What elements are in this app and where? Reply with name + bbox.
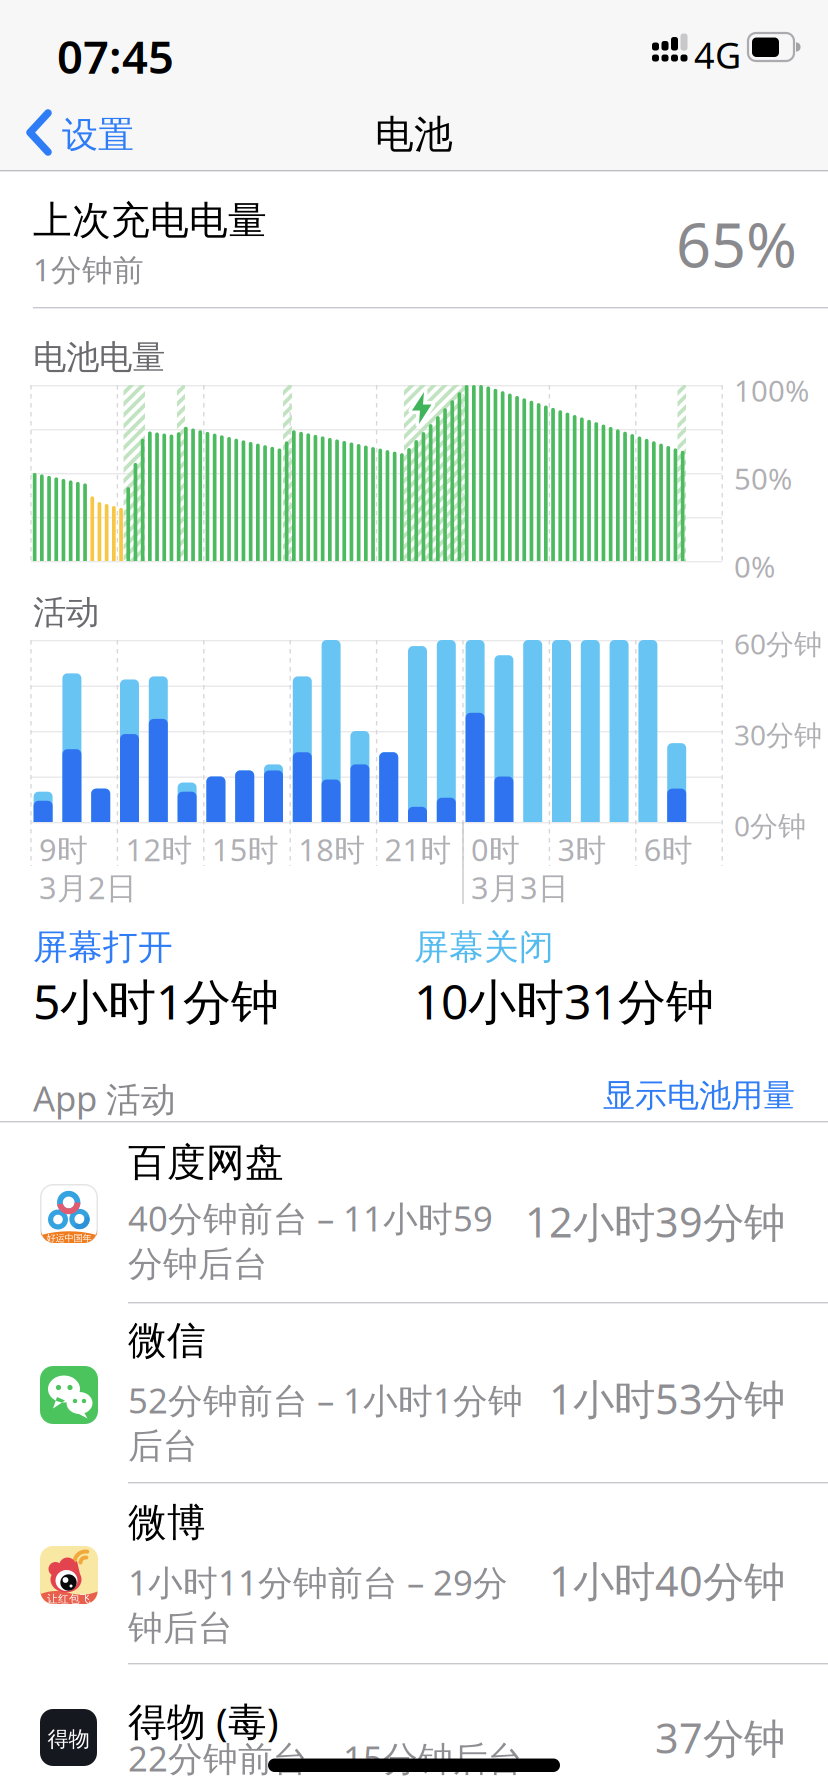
staticText: 60分钟 — [734, 625, 822, 662]
staticText: 100% — [734, 371, 809, 410]
staticText: 6时 — [644, 829, 693, 870]
staticText: 微博 — [128, 1499, 206, 1546]
staticText: 上次充电电量 — [33, 197, 267, 244]
staticText: 百度网盘 — [128, 1139, 284, 1186]
staticText: 1小时40分钟 — [549, 1553, 785, 1608]
button[interactable]: 得物 — [0, 1663, 828, 1792]
staticText: 10小时31分钟 — [414, 969, 714, 1033]
staticText: 65% — [676, 203, 797, 284]
staticText: 微信 — [128, 1317, 206, 1364]
staticText: 电池电量 — [33, 337, 165, 378]
staticText: 22分钟前台 – 15分钟后台 — [128, 1735, 523, 1781]
staticText: 15时 — [212, 829, 279, 870]
staticText: 屏幕打开 — [33, 926, 173, 969]
staticText: 07:45 — [57, 26, 174, 86]
staticText: 好运中国年 — [46, 1232, 91, 1244]
staticText: 18时 — [298, 829, 365, 870]
staticText: 0分钟 — [734, 807, 806, 844]
button[interactable]: 好运中国年 — [0, 1128, 828, 1302]
staticText: 3时 — [557, 829, 606, 870]
staticText: 9时 — [39, 829, 88, 870]
staticText: 得物 — [47, 1726, 89, 1752]
staticText: 得物 (毒) — [128, 1695, 279, 1746]
staticText: 40分钟前台 – 11小时59 分钟后台 — [128, 1195, 493, 1286]
staticText: 0时 — [471, 829, 520, 870]
button[interactable]: 显示电池用量 — [0, 1076, 795, 1115]
staticText: 活动 — [33, 592, 99, 633]
staticText: 1分钟前 — [33, 249, 144, 290]
staticText: 让红包飞 — [47, 1592, 91, 1606]
staticText: App 活动 — [33, 1075, 176, 1121]
staticText: 3月3日 — [471, 867, 569, 908]
staticText: 12时 — [125, 829, 192, 870]
staticText: 50% — [734, 459, 792, 498]
staticText: 屏幕关闭 — [414, 926, 554, 969]
staticText: 5小时1分钟 — [33, 969, 279, 1033]
staticText: 52分钟前台 – 1小时1分钟 后台 — [128, 1377, 523, 1468]
staticText: 设置 — [62, 113, 134, 157]
staticText: 3月2日 — [39, 867, 137, 908]
staticText: 0% — [734, 547, 775, 586]
staticText: 4G — [694, 31, 741, 79]
staticText: 显示电池用量 — [603, 1076, 795, 1115]
staticText: 1小时53分钟 — [549, 1371, 785, 1426]
staticText: 21时 — [385, 829, 452, 870]
staticText: 30分钟 — [734, 716, 822, 753]
staticText: 1小时11分钟前台 – 29分 钟后台 — [128, 1559, 508, 1650]
button[interactable]: 设置 — [25, 109, 155, 157]
button[interactable]: 让红包飞 — [0, 1482, 828, 1662]
staticText: 电池 — [375, 111, 453, 158]
staticText: 37分钟 — [655, 1710, 785, 1765]
button[interactable]: 微信 — [0, 1302, 828, 1482]
staticText: 12小时39分钟 — [525, 1194, 785, 1249]
